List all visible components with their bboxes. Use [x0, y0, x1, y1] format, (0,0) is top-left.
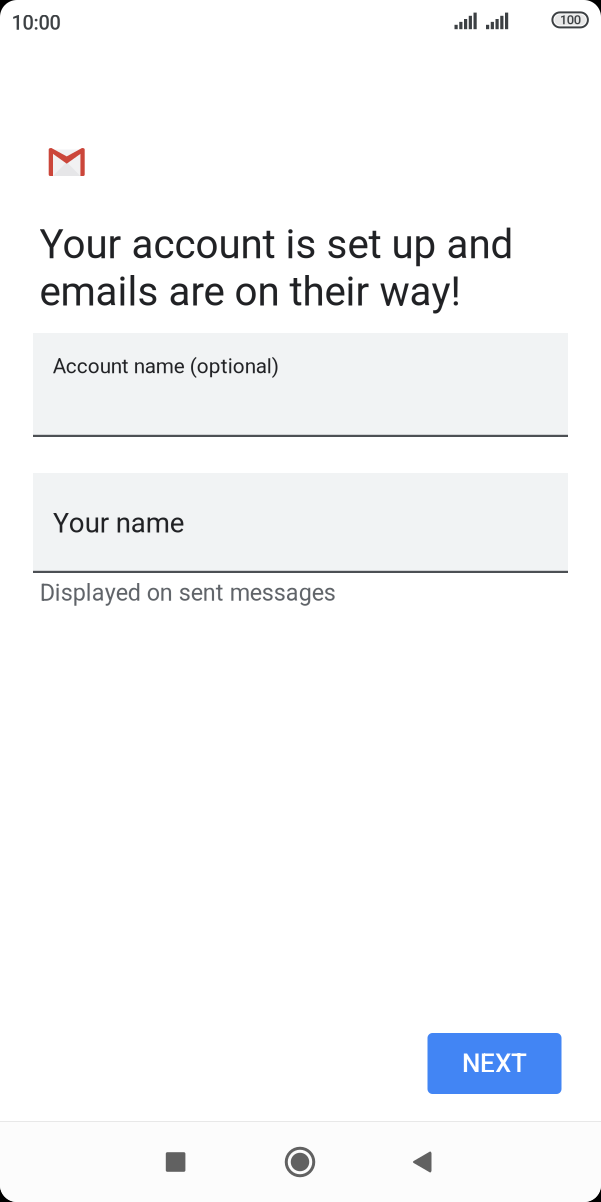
button[interactable]: NEXT [427, 1033, 561, 1094]
staticText: 10:00 [11, 11, 60, 35]
button[interactable]: Back [391, 1131, 453, 1193]
staticText: Displayed on sent messages [40, 579, 336, 606]
staticText: Account name (optional) [53, 354, 279, 378]
button[interactable]: Home [269, 1131, 331, 1193]
button[interactable]: Recent apps [145, 1131, 207, 1193]
staticText: NEXT [462, 1048, 527, 1079]
staticText: 100 [560, 12, 581, 27]
staticText: Your account is set up and emails are on… [39, 221, 513, 315]
staticText: Your name [53, 507, 185, 539]
